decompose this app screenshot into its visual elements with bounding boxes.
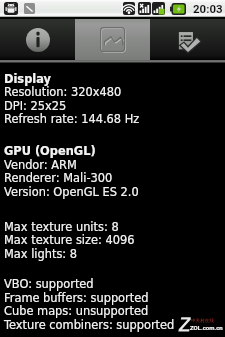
staticText: Frame buffers: supported (4, 291, 149, 304)
staticText: Renderer: Mali-300 (4, 171, 113, 184)
staticText: Cube maps: unsupported (4, 304, 149, 317)
staticText: DPI: 25x25 (4, 99, 67, 112)
staticText: 20:03 (193, 2, 223, 15)
button[interactable]: Graph (75, 19, 150, 60)
staticText: 中关村在线 (191, 318, 214, 324)
staticText: Display (4, 72, 51, 85)
staticText: Refresh rate: 144.68 Hz (4, 112, 140, 125)
staticText: Texture combiners: supported (4, 318, 175, 331)
button[interactable]: Info (0, 19, 75, 60)
staticText: VBO: supported (4, 277, 94, 290)
staticText: Version: OpenGL ES 2.0 (4, 185, 139, 198)
staticText: ZOL.com.cn (190, 324, 223, 331)
staticText: GPU (OpenGL) (4, 144, 96, 157)
staticText: Max lights: 8 (4, 247, 78, 260)
staticText: Vendor: ARM (4, 158, 77, 171)
button[interactable]: Tasks (150, 19, 225, 60)
staticText: Max texture size: 4096 (4, 233, 135, 246)
staticText: Resolution: 320x480 (4, 85, 122, 98)
staticText: Max texture units: 8 (4, 220, 119, 233)
